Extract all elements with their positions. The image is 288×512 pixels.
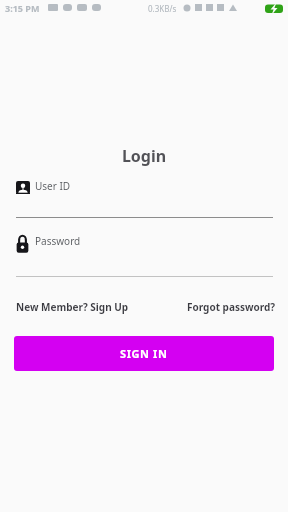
button[interactable]: Forgot password? [187,300,276,314]
staticText: Forgot password? [187,300,276,314]
button[interactable]: SIGN IN [14,336,274,371]
staticText: Password [35,234,81,248]
button[interactable]: User ID [16,178,273,218]
button[interactable]: New Member? Sign Up [16,300,129,314]
staticText: Login [0,145,288,167]
staticText: New Member? Sign Up [16,300,129,314]
staticText: SIGN IN [120,346,168,361]
staticText: 0.3KB/s [148,3,177,14]
staticText: 3:15 PM [5,2,40,14]
button[interactable]: Password [16,234,273,276]
staticText: User ID [35,179,71,193]
